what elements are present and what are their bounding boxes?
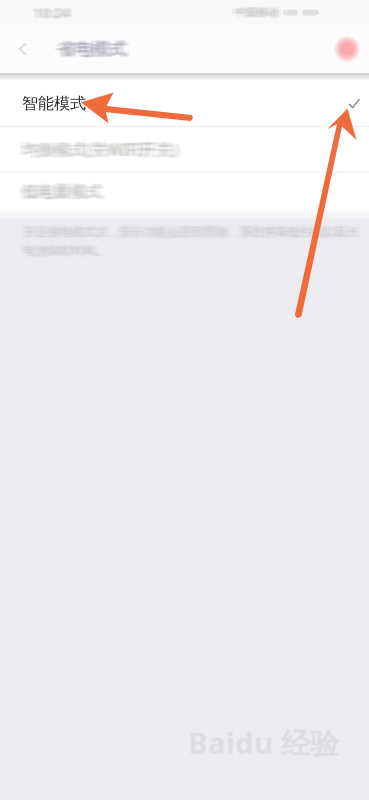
staticText: 省电模式: [59, 38, 127, 59]
staticText: 开启省电模式后，部分功能会受到限制，系统将降低性能以延长: [20, 225, 356, 239]
staticText: 开启省电模式后，部分功能会受到限制，系统将降低性能以延长: [24, 224, 360, 238]
staticText: 10:24: [31, 4, 67, 22]
staticText: 10:24: [35, 4, 71, 21]
staticText: 均衡模式(关WIFI开关): [22, 139, 177, 160]
staticText: 电池续航时间。: [23, 242, 107, 257]
staticText: 均衡模式(关WIFI开关): [25, 138, 180, 159]
staticText: 低电量模式: [20, 183, 100, 202]
staticText: 电池续航时间。: [26, 244, 110, 259]
button[interactable]: 智能模式: [0, 81, 369, 126]
staticText: 开启省电模式后，部分功能会受到限制，系统将降低性能以延长: [25, 224, 361, 238]
staticText: 中国移动: [231, 5, 275, 18]
staticText: 省电模式: [61, 38, 129, 59]
staticText: 低电量模式: [26, 181, 106, 201]
staticText: 均衡模式(关WIFI开关): [21, 138, 176, 159]
staticText: 电池续航时间。: [19, 244, 103, 259]
staticText: 省电模式: [58, 39, 126, 60]
staticText: 10:24: [33, 4, 69, 21]
staticText: 低电量模式: [24, 182, 104, 201]
staticText: 电池续航时间。: [20, 242, 104, 257]
staticText: 开启省电模式后，部分功能会受到限制，系统将降低性能以延长: [24, 225, 360, 240]
staticText: 均衡模式(关WIFI开关): [23, 139, 178, 161]
staticText: 开启省电模式后，部分功能会受到限制，系统将降低性能以延长: [27, 225, 363, 239]
staticText: 中国移动: [234, 6, 278, 19]
staticText: 电池续航时间。: [22, 244, 106, 259]
staticText: 10:24: [31, 3, 67, 20]
staticText: 均衡模式(关WIFI开关): [19, 139, 174, 160]
staticText: 中国移动: [236, 5, 280, 18]
staticText: 低电量模式: [23, 182, 103, 201]
staticText: 低电量模式: [18, 183, 98, 202]
staticText: 中国移动: [233, 6, 277, 19]
staticText: 10:24: [30, 3, 66, 20]
staticText: 中国移动: [238, 7, 282, 20]
staticText: 开启省电模式后，部分功能会受到限制，系统将降低性能以延长: [22, 225, 358, 240]
staticText: 中国移动: [232, 5, 276, 18]
staticText: 电池续航时间。: [27, 243, 111, 258]
staticText: 电池续航时间。: [25, 243, 109, 258]
staticText: 省电模式: [58, 38, 126, 59]
staticText: 电池续航时间。: [24, 243, 108, 258]
staticText: 省电模式: [57, 38, 125, 59]
staticText: 低电量模式: [19, 182, 99, 201]
staticText: 中国移动: [238, 5, 282, 18]
staticText: 开启省电模式后，部分功能会受到限制，系统将降低性能以延长: [19, 225, 355, 240]
staticText: 省电模式: [55, 38, 123, 59]
staticText: 省电模式: [54, 38, 122, 60]
staticText: 均衡模式(关WIFI开关): [23, 138, 178, 159]
staticText: 中国移动: [235, 6, 279, 19]
staticText: 10:24: [36, 4, 72, 22]
staticText: 10:24: [35, 3, 71, 20]
staticText: 开启省电模式后，部分功能会受到限制，系统将降低性能以延长: [20, 225, 356, 240]
staticText: 开启省电模式后，部分功能会受到限制，系统将降低性能以延长: [23, 224, 359, 238]
button[interactable]: 均衡模式(关WIFI开关): [0, 127, 369, 172]
staticText: 低电量模式: [20, 182, 100, 201]
staticText: 中国移动: [237, 6, 281, 19]
staticText: 低电量模式: [18, 181, 98, 201]
button[interactable]: Back: [0, 26, 46, 72]
staticText: 中国移动: [237, 7, 281, 20]
staticText: 中国移动: [239, 5, 283, 18]
staticText: 10:24: [30, 4, 66, 21]
staticText: 开启省电模式后，部分功能会受到限制，系统将降低性能以延长: [24, 225, 360, 239]
staticText: 中国移动: [235, 7, 279, 20]
staticText: 电池续航时间。: [23, 243, 107, 258]
staticText: 电池续航时间。: [24, 242, 108, 257]
staticText: 低电量模式: [21, 183, 101, 202]
staticText: 低电量模式: [23, 183, 103, 202]
staticText: 均衡模式(关WIFI开关): [20, 139, 175, 160]
staticText: 省电模式: [62, 38, 130, 60]
staticText: 开启省电模式后，部分功能会受到限制，系统将降低性能以延长: [21, 225, 357, 239]
staticText: 省电模式: [55, 39, 123, 60]
button[interactable]: 低电量模式: [0, 173, 369, 211]
staticText: 均衡模式(关WIFI开关): [23, 139, 178, 160]
staticText: 开启省电模式后，部分功能会受到限制，系统将降低性能以延长: [21, 224, 357, 238]
staticText: 开启省电模式后，部分功能会受到限制，系统将降低性能以延长: [19, 225, 355, 239]
staticText: 低电量模式: [22, 182, 102, 201]
staticText: 中国移动: [233, 5, 277, 18]
staticText: 均衡模式(关WIFI开关): [18, 138, 173, 159]
staticText: 电池续航时间。: [25, 242, 109, 257]
staticText: 10:24: [32, 4, 68, 22]
staticText: 10:24: [38, 4, 74, 21]
staticText: 省电模式: [59, 38, 127, 60]
staticText: 均衡模式(关WIFI开关): [19, 139, 174, 161]
staticText: 低电量模式: [25, 182, 105, 201]
staticText: 中国移动: [235, 5, 279, 18]
button[interactable]: Account: [333, 26, 369, 72]
staticText: 均衡模式(关WIFI开关): [22, 138, 177, 159]
staticText: 均衡模式(关WIFI开关): [19, 138, 174, 159]
staticText: 10:24: [33, 4, 69, 22]
staticText: 中国移动: [231, 6, 275, 19]
staticText: 中国移动: [238, 6, 282, 19]
staticText: 10:24: [32, 4, 68, 21]
staticText: 10:24: [36, 4, 72, 21]
staticText: 电池续航时间。: [19, 242, 103, 257]
staticText: 均衡模式(关WIFI开关): [21, 139, 176, 161]
staticText: 低电量模式: [23, 181, 103, 201]
staticText: 开启省电模式后，部分功能会受到限制，系统将降低性能以延长: [22, 224, 358, 238]
staticText: 均衡模式(关WIFI开关): [20, 139, 175, 161]
staticText: 10:24: [36, 3, 72, 20]
staticText: 均衡模式(关WIFI开关): [26, 138, 181, 159]
staticText: 中国移动: [232, 7, 276, 20]
